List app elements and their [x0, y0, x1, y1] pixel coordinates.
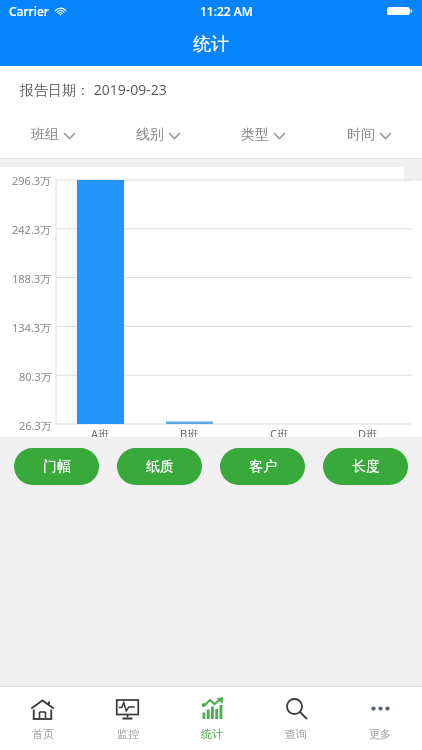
staticText: 242.3万	[12, 222, 52, 237]
staticText: 类型	[241, 126, 269, 144]
button[interactable]: 类型	[210, 112, 316, 158]
staticText: 监控	[117, 727, 139, 741]
staticText: 296.3万	[12, 173, 52, 188]
staticText: 188.3万	[12, 271, 52, 286]
staticText: C班	[270, 426, 288, 441]
staticText: B班	[180, 426, 199, 441]
button[interactable]: 首页	[0, 687, 85, 750]
staticText: 报告日期： 2019-09-23	[20, 80, 167, 99]
staticText: 时间	[347, 126, 375, 144]
staticText: 线别	[136, 126, 164, 144]
button[interactable]: 班组	[0, 112, 105, 158]
button[interactable]: 门幅	[14, 448, 99, 485]
staticText: 纸质	[146, 458, 174, 476]
button[interactable]: 更多	[338, 687, 422, 750]
button[interactable]: 监控	[85, 687, 170, 750]
staticText: 26.3万	[19, 418, 52, 433]
staticText: 客户	[249, 458, 277, 476]
staticText: 更多	[369, 727, 391, 741]
button[interactable]: 查询	[254, 687, 338, 750]
staticText: D班	[358, 426, 378, 441]
staticText: A班	[91, 426, 110, 441]
staticText: 首页	[32, 727, 54, 741]
staticText: 134.3万	[12, 320, 52, 335]
staticText: 班组	[31, 126, 59, 144]
staticText: 统计	[193, 33, 229, 56]
button[interactable]: 客户	[220, 448, 305, 485]
button[interactable]: 时间	[316, 112, 422, 158]
staticText: 门幅	[43, 458, 71, 476]
staticText: Carrier	[9, 3, 49, 19]
staticText: 长度	[352, 458, 380, 476]
staticText: 统计	[201, 727, 223, 741]
staticText: 查询	[285, 727, 307, 741]
button[interactable]: 线别	[105, 112, 210, 158]
button[interactable]: 纸质	[117, 448, 202, 485]
staticText: 11:22 AM	[200, 3, 253, 19]
staticText: 80.3万	[19, 369, 52, 384]
button[interactable]: 长度	[323, 448, 408, 485]
button[interactable]: 统计	[170, 687, 254, 750]
